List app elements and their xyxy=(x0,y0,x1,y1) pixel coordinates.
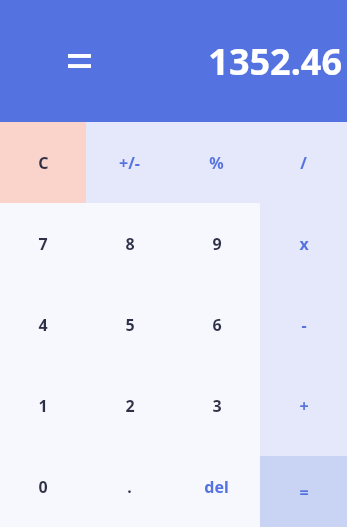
staticText: 1 xyxy=(38,395,48,417)
button[interactable]: 1 xyxy=(0,365,86,446)
button[interactable]: 6 xyxy=(173,284,260,365)
staticText: 5 xyxy=(125,314,135,336)
button[interactable]: x xyxy=(260,203,347,284)
button[interactable]: +/- xyxy=(86,122,173,203)
button[interactable]: 7 xyxy=(0,203,86,284)
staticText: 2 xyxy=(125,395,135,417)
staticText: = xyxy=(299,481,309,503)
button[interactable]: 9 xyxy=(173,203,260,284)
button[interactable]: 4 xyxy=(0,284,86,365)
button[interactable]: - xyxy=(260,284,347,365)
button[interactable]: 0 xyxy=(0,446,86,527)
button[interactable]: 2 xyxy=(86,365,173,446)
button[interactable]: / xyxy=(260,122,347,203)
button[interactable]: . xyxy=(86,446,173,527)
staticText: - xyxy=(301,314,307,336)
button[interactable]: 5 xyxy=(86,284,173,365)
staticText: 4 xyxy=(38,314,48,336)
staticText: . xyxy=(127,476,132,498)
staticText: / xyxy=(300,152,307,174)
staticText: % xyxy=(209,152,224,174)
staticText: del xyxy=(204,476,229,498)
button[interactable]: % xyxy=(173,122,260,203)
staticText: 7 xyxy=(38,233,48,255)
staticText: +/- xyxy=(119,152,140,174)
button[interactable]: Equals xyxy=(57,39,101,83)
staticText: 8 xyxy=(125,233,135,255)
button[interactable]: del xyxy=(173,446,260,527)
button[interactable]: = xyxy=(260,456,347,527)
staticText: 6 xyxy=(212,314,222,336)
staticText: x xyxy=(299,233,309,255)
staticText: + xyxy=(299,395,309,417)
staticText: 0 xyxy=(38,476,48,498)
staticText: 3 xyxy=(212,395,222,417)
staticText: 1352.46 xyxy=(208,37,342,86)
button[interactable]: C xyxy=(0,122,86,203)
staticText: 9 xyxy=(212,233,222,255)
button[interactable]: 3 xyxy=(173,365,260,446)
button[interactable]: + xyxy=(260,365,347,446)
button[interactable]: 8 xyxy=(86,203,173,284)
staticText: C xyxy=(38,152,49,174)
